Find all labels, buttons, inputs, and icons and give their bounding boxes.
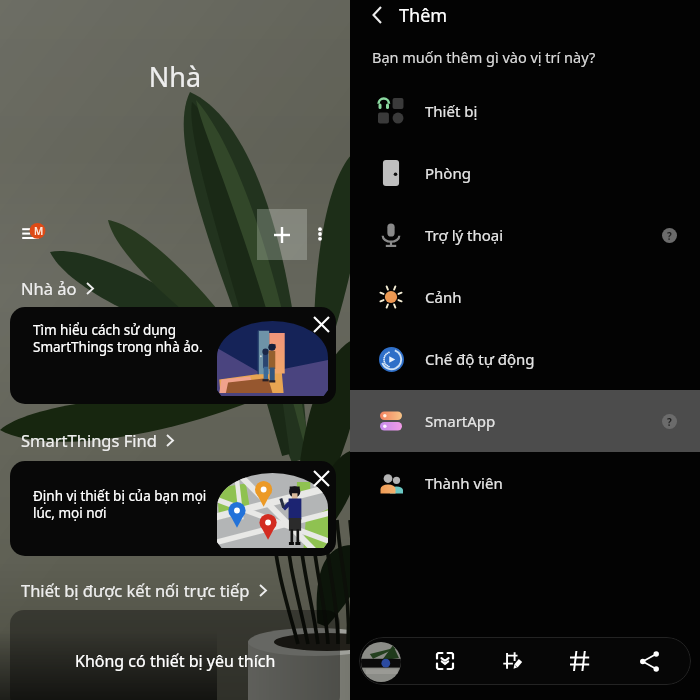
button[interactable]: Help (662, 228, 677, 243)
staticText: Phòng (425, 163, 471, 183)
button[interactable]: Scan (427, 643, 463, 679)
button[interactable]: Thành viên (350, 452, 700, 514)
button[interactable]: More options (306, 220, 333, 247)
button[interactable]: Phòng (350, 142, 700, 204)
button[interactable]: Edit (494, 643, 530, 679)
button[interactable]: Nhà ảo (21, 277, 94, 299)
button[interactable]: Tìm hiểu cách sử dụng SmartThings trong … (10, 307, 336, 404)
button[interactable]: Thiết bị (350, 80, 700, 142)
button[interactable]: Help (662, 414, 677, 429)
button[interactable]: Close (307, 310, 335, 338)
staticText: ? (667, 415, 672, 429)
button[interactable]: Thiết bị được kết nối trực tiếp (21, 579, 267, 601)
button[interactable]: Close (307, 464, 335, 492)
staticText: Nhà (0, 58, 350, 95)
button[interactable]: SmartThings Find (21, 429, 174, 451)
button[interactable]: Trợ lý thoại (350, 204, 700, 266)
button[interactable]: Back (362, 0, 392, 30)
staticText: Nhà ảo (21, 277, 77, 299)
staticText: SmartApp (425, 411, 496, 431)
button[interactable]: Add (257, 209, 307, 260)
staticText: Thành viên (425, 473, 503, 493)
staticText: Bạn muốn thêm gì vào vị trí này? (372, 47, 596, 67)
staticText: Tìm hiểu cách sử dụng SmartThings trong … (33, 321, 233, 356)
staticText: Thiết bị (425, 101, 478, 121)
button[interactable]: Recent screenshot (361, 642, 401, 682)
button[interactable]: Chế độ tự động (350, 328, 700, 390)
staticText: Định vị thiết bị của bạn mọi lúc, mọi nơ… (33, 487, 233, 522)
staticText: SmartThings Find (21, 429, 157, 451)
staticText: Cảnh (425, 287, 462, 307)
staticText: M (34, 224, 44, 238)
staticText: Không có thiết bị yêu thích (75, 650, 276, 672)
button[interactable]: Cảnh (350, 266, 700, 328)
button[interactable]: Share (631, 643, 667, 679)
staticText: Trợ lý thoại (425, 225, 504, 245)
button[interactable]: Không có thiết bị yêu thích (10, 610, 340, 700)
staticText: ? (667, 229, 672, 243)
staticText: Thiết bị được kết nối trực tiếp (21, 579, 250, 601)
button[interactable]: Menu (18, 220, 52, 246)
staticText: Thêm (399, 3, 448, 28)
button[interactable]: Định vị thiết bị của bạn mọi lúc, mọi nơ… (10, 461, 336, 556)
button[interactable]: Tag (562, 643, 598, 679)
button[interactable]: SmartApp (350, 390, 700, 452)
staticText: Chế độ tự động (425, 349, 535, 369)
